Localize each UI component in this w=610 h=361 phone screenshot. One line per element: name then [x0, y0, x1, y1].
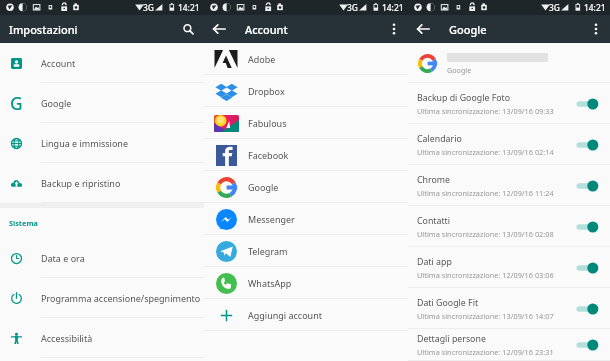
staticText: Ultima sincronizzazione: 13/09/16 14:07 — [417, 311, 554, 321]
staticText: Programma accensione/spegnimento — [41, 292, 201, 304]
button[interactable]: Backup e ripristino — [0, 163, 204, 203]
staticText: Ultima sincronizzazione: 12/09/16 11:24 — [417, 188, 554, 198]
staticText: Fabulous — [248, 117, 287, 129]
button[interactable]: Google — [204, 171, 408, 203]
staticText: 14:21 — [584, 2, 606, 13]
button[interactable]: Facebook — [204, 139, 408, 171]
staticText: Google — [447, 65, 472, 75]
staticText: WhatsApp — [248, 277, 292, 289]
button[interactable]: Indietro — [210, 20, 228, 38]
staticText: Dati Google Fit — [417, 297, 479, 309]
button[interactable]: Altre opzioni — [385, 20, 403, 38]
staticText: Google — [248, 181, 279, 193]
staticText: Dropbox — [248, 85, 285, 97]
staticText: Account — [245, 22, 288, 37]
staticText: 14:21 — [178, 2, 200, 13]
button[interactable]: Attiva sincronizzazione Contatti — [575, 219, 599, 235]
button[interactable]: Messenger — [204, 203, 408, 235]
staticText: Contatti — [417, 215, 451, 227]
staticText: Ultima sincronizzazione: 13/09/16 02:14 — [417, 147, 554, 157]
button[interactable]: Chrome — [408, 165, 610, 206]
button[interactable]: Attiva sincronizzazione Dettagli persone — [575, 337, 599, 353]
button[interactable]: Dati Google Fit — [408, 288, 610, 329]
staticText: 14:21 — [382, 2, 404, 13]
staticText: Google — [41, 97, 72, 109]
button[interactable]: WhatsApp — [204, 267, 408, 299]
staticText: Dettagli persone — [417, 333, 486, 345]
button[interactable]: Aggiungi account — [204, 299, 408, 331]
button[interactable]: Attiva sincronizzazione Calendario — [575, 137, 599, 153]
staticText: G — [10, 91, 23, 115]
button[interactable]: Programma accensione/spegnimento — [0, 278, 204, 318]
button[interactable]: Backup di Google Foto — [408, 83, 610, 124]
staticText: Aggiungi account — [248, 309, 322, 321]
button[interactable]: Contatti — [408, 206, 610, 247]
staticText: Ultima sincronizzazione: 13/09/16 02:08 — [417, 229, 554, 239]
button[interactable]: Altre opzioni — [587, 20, 605, 38]
button[interactable]: Telegram — [204, 235, 408, 267]
button[interactable]: Lingua e immissione — [0, 123, 204, 163]
staticText: Backup e ripristino — [41, 177, 121, 189]
staticText: Sistema — [9, 218, 38, 228]
button[interactable]: Attiva sincronizzazione Chrome — [575, 178, 599, 194]
button[interactable]: Google — [408, 44, 610, 83]
staticText: Calendario — [417, 133, 462, 145]
staticText: Account — [41, 57, 76, 69]
staticText: Google — [449, 22, 487, 37]
staticText: Backup di Google Foto — [417, 92, 511, 104]
button[interactable]: Indietro — [414, 20, 432, 38]
button[interactable]: Attiva sincronizzazione Dati Google Fit — [575, 301, 599, 317]
button[interactable]: Fabulous — [204, 107, 408, 139]
staticText: Ultima sincronizzazione: 12/09/16 03:06 — [417, 270, 554, 280]
staticText: 3G — [549, 2, 560, 13]
button[interactable]: Dettagli persone — [408, 329, 610, 361]
button[interactable]: Dropbox — [204, 75, 408, 107]
button[interactable]: G — [0, 83, 204, 123]
staticText: Ultima sincronizzazione: 13/09/16 09:33 — [417, 106, 554, 116]
button[interactable]: Attiva sincronizzazione Backup di Google… — [575, 96, 599, 112]
staticText: 3G — [347, 2, 358, 13]
button[interactable]: Dati app — [408, 247, 610, 288]
button[interactable]: Adobe — [204, 43, 408, 75]
staticText: Impostazioni — [9, 22, 78, 37]
button[interactable]: Cerca — [179, 20, 197, 38]
staticText: Dati app — [417, 256, 452, 268]
staticText: 3G — [143, 2, 154, 13]
staticText: Chrome — [417, 174, 450, 186]
staticText: Ultima sincronizzazione: 12/09/16 23:31 — [417, 347, 554, 357]
button[interactable]: Account — [0, 43, 204, 83]
staticText: Accessibilità — [41, 332, 93, 344]
button[interactable]: Data e ora — [0, 238, 204, 278]
staticText: Lingua e immissione — [41, 137, 129, 149]
button[interactable]: Calendario — [408, 124, 610, 165]
staticText: Facebook — [248, 149, 289, 161]
staticText: Adobe — [248, 53, 276, 65]
staticText: Telegram — [248, 245, 288, 257]
button[interactable]: Accessibilità — [0, 318, 204, 358]
staticText: Data e ora — [41, 252, 85, 264]
staticText: Messenger — [248, 213, 295, 225]
button[interactable]: Attiva sincronizzazione Dati app — [575, 260, 599, 276]
